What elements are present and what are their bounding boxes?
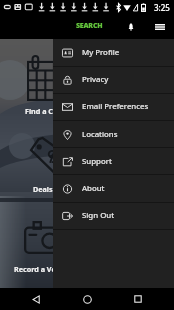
staticText: Deals <box>33 184 53 194</box>
staticText: Sign Out <box>82 210 115 221</box>
staticText: SEARCH <box>76 21 103 31</box>
staticText: My Profile <box>82 47 120 58</box>
button[interactable]: Email Preferences <box>53 93 174 120</box>
button[interactable]: Back <box>21 288 51 310</box>
button[interactable]: Deals <box>0 0 174 310</box>
button[interactable]: Notifications <box>120 14 142 39</box>
staticText: Find a Car <box>25 106 61 116</box>
button[interactable]: Find a Car <box>0 0 174 310</box>
staticText: Record a Vehicle <box>14 264 73 274</box>
button[interactable]: Sign Out <box>53 202 174 229</box>
button[interactable]: Recent apps <box>123 288 153 310</box>
staticText: 3:25 <box>154 2 170 13</box>
staticText: Privacy <box>82 74 109 85</box>
button[interactable]: Support <box>53 148 174 175</box>
button[interactable]: My Profile <box>53 39 174 66</box>
button[interactable]: Open menu <box>149 14 171 39</box>
button[interactable]: Privacy <box>53 66 174 93</box>
button[interactable]: Record a Vehicle <box>0 0 174 310</box>
button[interactable]: Locations <box>53 121 174 148</box>
staticText: About <box>82 183 105 194</box>
staticText: Support <box>82 156 112 167</box>
staticText: Locations <box>82 129 118 140</box>
button[interactable]: About <box>53 175 174 202</box>
button[interactable]: Home <box>72 288 102 310</box>
staticText: Email Preferences <box>82 101 149 112</box>
